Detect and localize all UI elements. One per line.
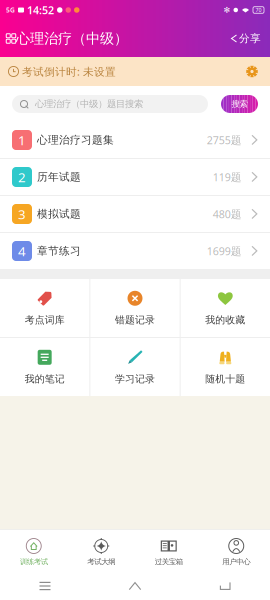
staticText: 分享 — [239, 32, 261, 45]
button[interactable]: Home — [90, 572, 180, 600]
staticText: 1699题 — [207, 244, 242, 258]
staticText: 14:52 — [27, 3, 54, 17]
button[interactable]: Recents — [0, 572, 90, 600]
button[interactable]: 我的收藏 — [181, 279, 270, 337]
staticText: 过关宝箱 — [155, 557, 183, 566]
button[interactable]: 我的笔记 — [0, 338, 89, 396]
staticText: 480题 — [213, 207, 242, 221]
staticText: 学习记录 — [115, 373, 155, 385]
staticText: 5G — [6, 6, 15, 14]
button[interactable]: 随机十题 — [181, 338, 270, 396]
button[interactable]: 考试大纲 — [67, 530, 135, 572]
button[interactable]: 4 — [0, 233, 270, 269]
button[interactable]: 1 — [0, 122, 270, 158]
button[interactable]: 过关宝箱 — [135, 530, 202, 572]
staticText: 章节练习 — [37, 244, 81, 257]
staticText: ✻ — [223, 5, 230, 15]
staticText: 3 — [18, 205, 26, 223]
staticText: 心理治疗习题集 — [37, 133, 114, 146]
staticText: 训练考试 — [20, 557, 48, 566]
staticText: 4 — [18, 242, 26, 260]
button[interactable]: Settings — [242, 60, 262, 82]
staticText: 考试倒计时: 未设置 — [19, 64, 116, 79]
staticText: 错题记录 — [115, 314, 155, 326]
staticText: 心理治疗（中级） — [16, 30, 128, 47]
staticText: 2755题 — [207, 133, 242, 147]
button[interactable]: 3 — [0, 196, 270, 232]
button[interactable]: 学习记录 — [90, 338, 180, 396]
staticText: 模拟试题 — [37, 207, 81, 220]
button[interactable]: Back — [180, 572, 270, 600]
button[interactable]: 用户中心 — [202, 530, 270, 572]
staticText: 1 — [18, 131, 26, 149]
button[interactable]: 搜索 — [221, 95, 258, 113]
button[interactable]: 考点词库 — [0, 279, 89, 337]
staticText: 考试大纲 — [87, 557, 115, 566]
staticText: 70 — [255, 6, 261, 14]
staticText: 心理治疗（中级）题目搜索 — [29, 98, 143, 110]
button[interactable]: 错题记录 — [90, 279, 180, 337]
staticText: 我的笔记 — [25, 373, 65, 385]
staticText: 历年试题 — [37, 170, 81, 183]
button[interactable]: 训练考试 — [0, 530, 67, 572]
staticText: 考点词库 — [25, 314, 65, 326]
staticText: 搜索 — [231, 99, 247, 109]
staticText: 119题 — [213, 170, 242, 184]
button[interactable]: 分享 — [227, 26, 264, 50]
staticText: 随机十题 — [205, 373, 245, 385]
staticText: 我的收藏 — [205, 314, 245, 326]
button[interactable]: 2 — [0, 159, 270, 195]
button[interactable]: 心理治疗（中级）题目搜索 — [12, 95, 208, 113]
staticText: 2 — [18, 168, 26, 186]
staticText: 用户中心 — [222, 557, 250, 566]
